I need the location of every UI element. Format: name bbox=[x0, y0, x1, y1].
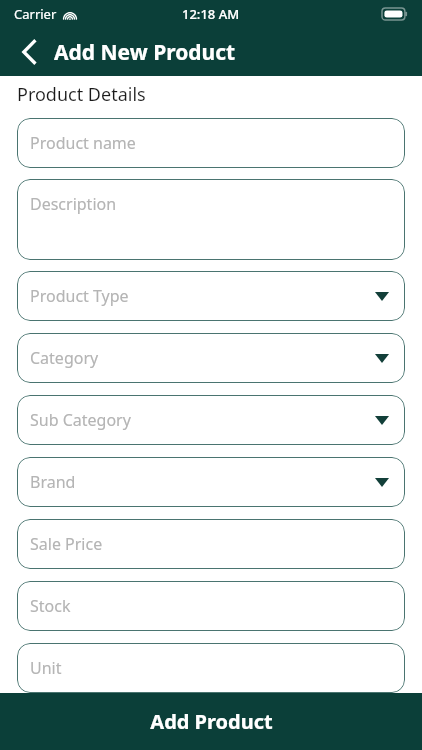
staticText: Product name bbox=[30, 132, 136, 154]
button[interactable]: Unit bbox=[17, 643, 405, 693]
staticText: Stock bbox=[30, 595, 71, 617]
button[interactable]: Description bbox=[17, 179, 405, 260]
button[interactable]: Product Type bbox=[17, 271, 405, 321]
staticText: Unit bbox=[30, 657, 62, 679]
staticText: Brand bbox=[30, 471, 76, 493]
staticText: Category bbox=[30, 347, 99, 369]
button[interactable]: Sale Price bbox=[17, 519, 405, 569]
staticText: Description bbox=[30, 193, 117, 215]
staticText: 12:18 AM bbox=[182, 5, 240, 23]
button[interactable]: Add Product bbox=[0, 693, 422, 750]
button[interactable]: Product name bbox=[17, 118, 405, 168]
staticText: Carrier bbox=[14, 5, 57, 23]
staticText: Add Product bbox=[150, 708, 273, 735]
button[interactable]: Category bbox=[17, 333, 405, 383]
staticText: Add New Product bbox=[54, 38, 236, 67]
staticText: Sale Price bbox=[30, 533, 103, 555]
button[interactable]: Brand bbox=[17, 457, 405, 507]
button[interactable]: Stock bbox=[17, 581, 405, 631]
button[interactable]: Sub Category bbox=[17, 395, 405, 445]
staticText: Product Type bbox=[30, 285, 129, 307]
button[interactable]: Back bbox=[10, 33, 48, 71]
staticText: Sub Category bbox=[30, 409, 131, 431]
staticText: Product Details bbox=[17, 82, 146, 107]
